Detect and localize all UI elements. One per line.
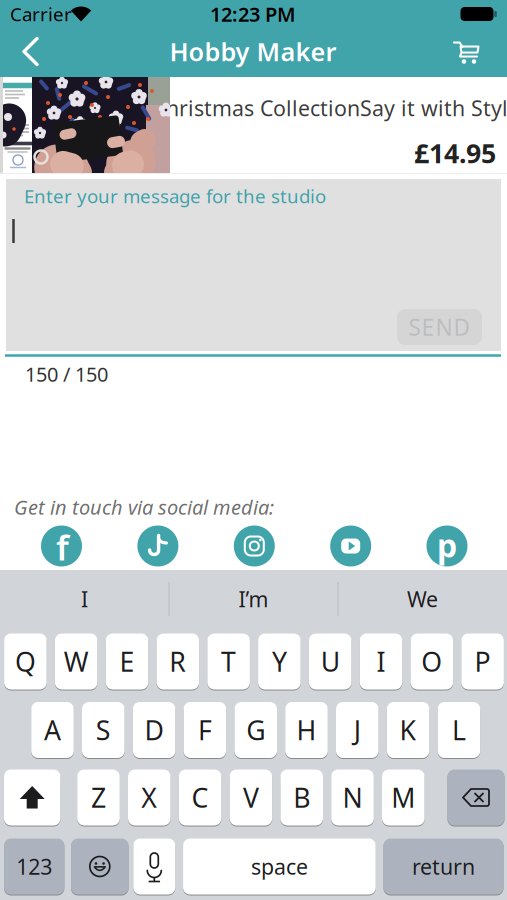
button[interactable]: Delete [447,769,504,826]
button[interactable]: N [331,769,374,826]
staticText: D [145,712,164,748]
button[interactable]: Q [4,633,47,690]
staticText: M [391,780,415,815]
staticText: I [376,644,385,679]
staticText: Christmas CollectionSay it with Style Co… [153,94,507,122]
button[interactable]: M [382,769,425,826]
staticText: Carrier [10,2,72,26]
staticText: B [293,780,310,815]
button[interactable]: F [184,701,226,758]
button[interactable]: H [285,701,328,758]
button[interactable]: Shift [4,769,60,826]
staticText: 150 / 150 [25,361,108,387]
button[interactable]: TikTok [137,525,178,566]
staticText: I [81,585,88,613]
staticText: I’m [238,585,268,613]
button[interactable]: Pinterest [426,525,467,566]
staticText: C [192,780,209,815]
button[interactable]: P [461,633,504,690]
button[interactable]: Y [258,633,301,690]
staticText: T [221,644,236,679]
button[interactable]: Cart [452,38,482,64]
staticText: V [243,780,259,815]
staticText: G [246,712,265,748]
button[interactable]: Christmas CollectionSay it with Style Co… [0,77,507,173]
staticText: F [198,712,212,748]
staticText: H [296,712,316,748]
staticText: £14.95 [414,135,496,171]
staticText: X [141,780,157,815]
button[interactable]: space [183,838,376,895]
staticText: P [475,644,491,679]
button[interactable]: C [179,769,221,826]
button[interactable]: O [410,633,453,690]
staticText: W [64,644,89,679]
staticText: E [119,644,134,679]
button[interactable]: J [336,701,379,758]
staticText: SEND [408,312,470,342]
button[interactable]: D [133,701,175,758]
button[interactable]: SEND [397,309,482,345]
staticText: K [400,712,417,748]
button[interactable]: S [82,701,125,758]
button[interactable]: Z [77,769,120,826]
staticText: Q [15,644,36,679]
button[interactable]: U [309,633,351,690]
staticText: return [412,852,475,881]
button[interactable]: We [338,570,506,628]
button[interactable]: R [156,633,199,690]
staticText: f [56,524,69,570]
button[interactable]: A [31,701,74,758]
staticText: Z [91,780,106,815]
button[interactable]: L [438,701,480,758]
button[interactable]: 123 [4,838,64,895]
staticText: We [407,585,438,613]
staticText: L [452,712,466,748]
button[interactable]: T [207,633,250,690]
staticText: Enter your message for the studio [24,184,326,208]
staticText: Get in touch via social media: [14,494,274,520]
staticText: N [342,780,362,815]
staticText: A [44,712,61,748]
button[interactable]: I [360,633,402,690]
button[interactable]: Facebook [41,525,82,566]
button[interactable]: G [234,701,277,758]
staticText: 12:23 PM [210,1,296,27]
staticText: 123 [16,852,52,881]
button[interactable]: E [106,633,148,690]
button[interactable]: X [128,769,171,826]
button[interactable]: Dictate [133,838,175,895]
button[interactable]: Back [8,31,52,71]
staticText: Hobby Maker [169,35,336,68]
button[interactable]: Instagram [234,525,275,566]
button[interactable]: return [383,838,503,895]
button[interactable]: V [230,769,272,826]
staticText: S [96,712,111,748]
staticText: R [169,644,186,679]
button[interactable]: K [387,701,429,758]
button[interactable]: YouTube [330,525,371,566]
button[interactable]: I [0,570,168,628]
button[interactable]: W [55,633,97,690]
button[interactable]: B [280,769,323,826]
staticText: space [251,852,308,881]
button[interactable]: Emoji [71,838,128,895]
staticText: Y [272,644,287,679]
button[interactable]: I’m [169,570,337,628]
staticText: J [354,712,361,748]
staticText: p [437,524,457,566]
staticText: O [421,644,442,679]
staticText: U [321,644,340,679]
